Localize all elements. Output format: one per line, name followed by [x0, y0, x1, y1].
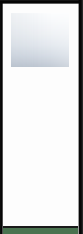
- button[interactable]: Featured photo: [11, 13, 69, 67]
